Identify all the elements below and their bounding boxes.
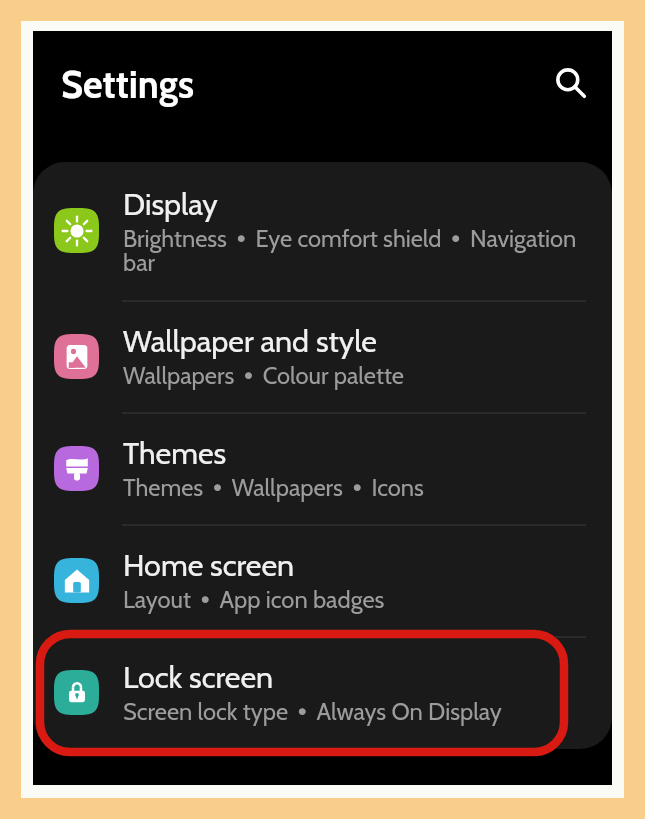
staticText: Screen lock type • Always On Display <box>123 697 502 726</box>
button[interactable]: Wallpaper and style <box>33 301 612 413</box>
staticText: Home screen <box>123 547 295 584</box>
button[interactable]: Display <box>33 162 612 301</box>
staticText: Brightness • Eye comfort shield • Naviga… <box>123 224 577 253</box>
staticText: Settings <box>61 61 194 107</box>
staticText: Display <box>123 186 218 223</box>
staticText: Lock screen <box>123 659 274 696</box>
button[interactable]: Search <box>547 59 595 107</box>
staticText: bar <box>123 248 156 277</box>
button[interactable]: Home screen <box>33 525 612 637</box>
staticText: Wallpapers • Colour palette <box>123 361 404 390</box>
staticText: Themes <box>123 435 227 472</box>
staticText: Themes • Wallpapers • Icons <box>123 473 424 502</box>
staticText: Layout • App icon badges <box>123 585 385 614</box>
button[interactable]: Themes <box>33 413 612 525</box>
button[interactable]: Lock screen <box>33 637 612 749</box>
staticText: Wallpaper and style <box>123 323 377 360</box>
